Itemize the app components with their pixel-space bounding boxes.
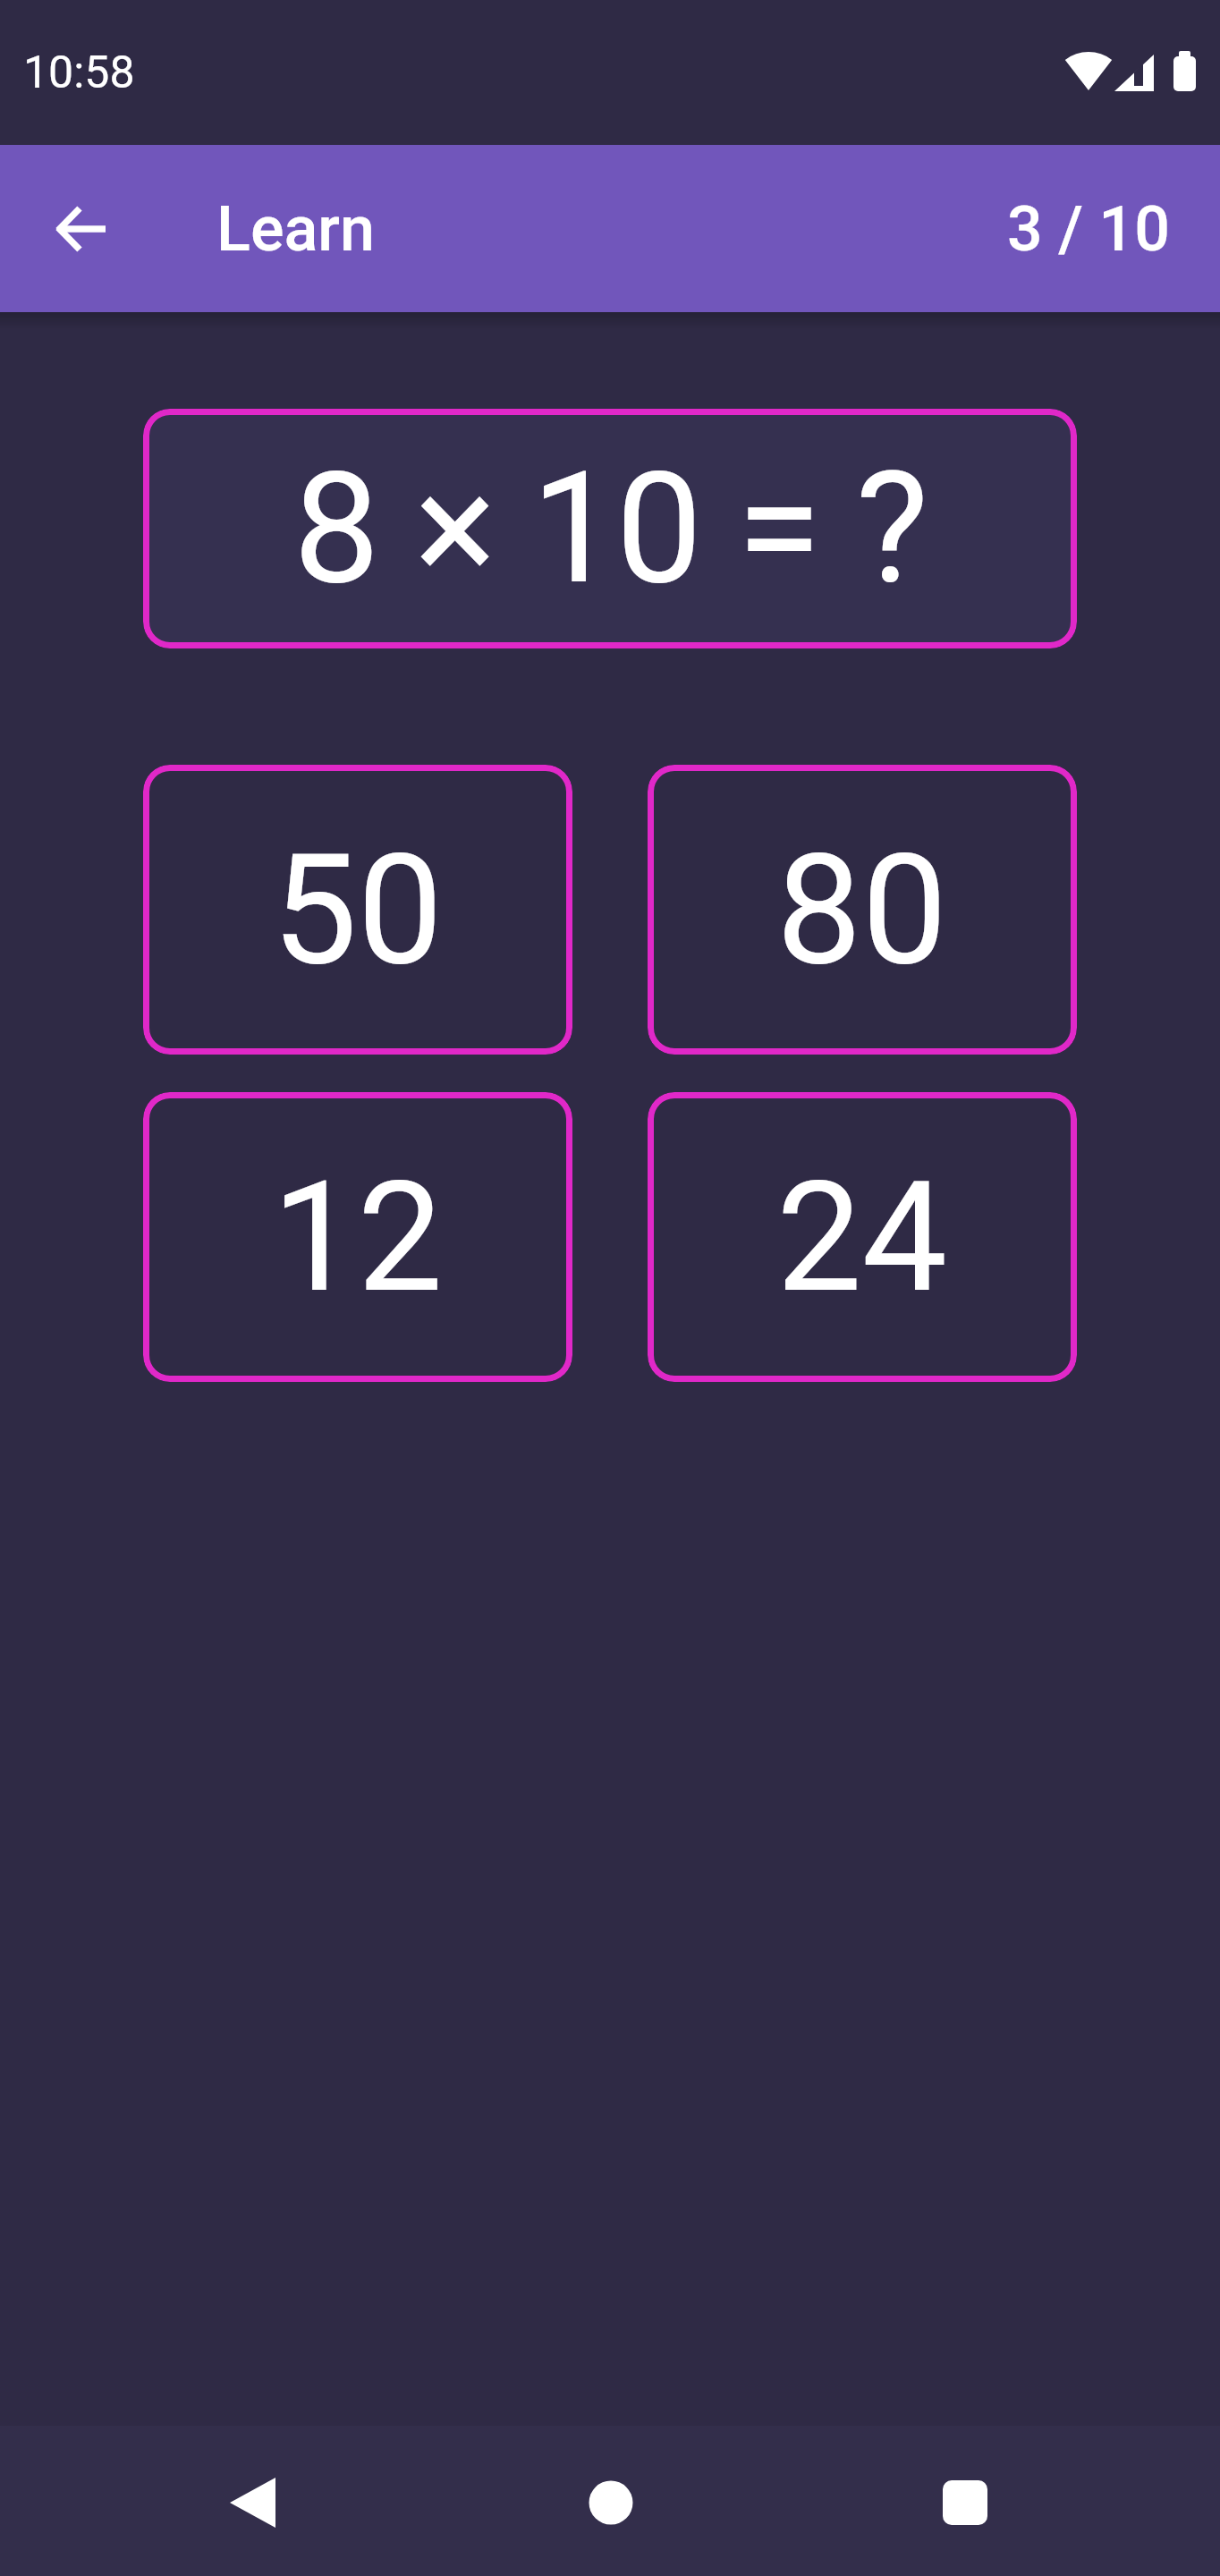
staticText: 24 [776,1148,948,1326]
button[interactable] [406,2426,813,2576]
button[interactable]: 50 [143,765,572,1055]
button[interactable] [0,2426,406,2576]
staticText: Learn [216,192,375,266]
staticText: 10:58 [23,47,135,99]
staticText: 3 / 10 [1007,192,1170,266]
button[interactable] [45,191,120,267]
staticText: 80 [776,821,948,999]
staticText: 12 [272,1148,444,1326]
staticText: 8 × 10 = ? [293,438,928,619]
button[interactable] [813,2426,1220,2576]
staticText: 50 [272,821,444,999]
button[interactable]: 24 [648,1092,1077,1382]
button[interactable]: 12 [143,1092,572,1382]
button[interactable]: 80 [648,765,1077,1055]
